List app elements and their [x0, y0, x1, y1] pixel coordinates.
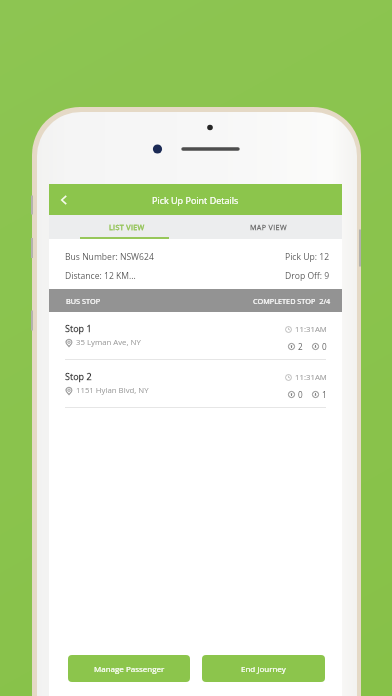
button[interactable]: End Journey — [202, 655, 325, 682]
staticText: 1 — [322, 389, 327, 400]
staticText: 11:31AM — [295, 372, 327, 383]
staticText: MAP VIEW — [250, 222, 287, 232]
staticText: 35 Lyman Ave, NY — [76, 337, 141, 348]
staticText: 11:31AM — [295, 324, 327, 335]
staticText: Pick Up: 12 — [285, 251, 330, 263]
button[interactable]: Back — [49, 184, 79, 215]
button[interactable]: Stop 1 — [49, 312, 342, 360]
staticText: Stop 1 — [65, 322, 92, 334]
staticText: BUS STOP — [66, 296, 101, 306]
staticText: Stop 2 — [65, 370, 92, 382]
staticText: Pick Up Point Details — [152, 194, 239, 206]
staticText: 1151 Hylan Blvd, NY — [76, 385, 149, 396]
staticText: 0 — [298, 389, 303, 400]
staticText: Manage Passenger — [94, 663, 165, 674]
button[interactable]: MAP VIEW — [195, 215, 342, 239]
staticText: End Journey — [241, 663, 286, 674]
staticText: 0 — [322, 341, 327, 352]
button[interactable]: LIST VIEW — [49, 215, 195, 239]
staticText: Drop Off: 9 — [285, 270, 330, 282]
button[interactable]: Manage Passenger — [68, 655, 190, 682]
staticText: 2 — [298, 341, 303, 352]
staticText: COMPLETED STOP 2/4 — [253, 296, 331, 306]
staticText: Bus Number: NSW624 — [65, 251, 154, 263]
staticText: LIST VIEW — [109, 222, 145, 232]
button[interactable]: Stop 2 — [49, 360, 342, 408]
staticText: Distance: 12 KM... — [65, 270, 136, 282]
